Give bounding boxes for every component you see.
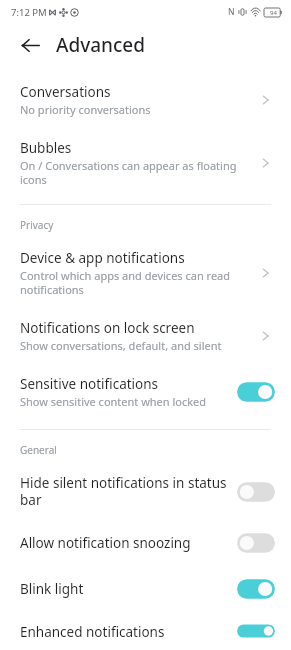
staticText: Show sensitive content when locked [20,394,207,409]
staticText: Hide silent notifications in status bar [20,474,227,509]
staticText: No priority conversations [20,102,151,117]
button[interactable]: Back [14,29,46,61]
button[interactable]: Toggle off [237,480,275,504]
staticText: Privacy [20,218,54,232]
button[interactable]: Sensitive notifications [0,364,291,420]
button[interactable]: Hide silent notifications in status bar [0,463,291,520]
staticText: On / Conversations can appear as floatin… [20,158,245,187]
staticText: Control which apps and devices can read … [20,268,245,297]
button[interactable]: Bubbles [0,128,291,198]
button[interactable]: Notifications on lock screen [0,308,291,364]
staticText: General [20,443,57,457]
staticText: Sensitive notifications [20,375,159,393]
staticText: N [228,6,235,18]
staticText: Blink light [20,580,84,598]
staticText: 94 [270,9,277,17]
staticText: Enhanced notifications [20,623,165,639]
staticText: Device & app notifications [20,249,185,267]
staticText: Conversations [20,83,111,101]
button[interactable]: Toggle on [237,380,275,404]
staticText: Show conversations, default, and silent [20,338,222,353]
button[interactable]: Conversations [0,72,291,128]
staticText: Bubbles [20,139,72,157]
staticText: Allow notification snoozing [20,534,191,552]
staticText: Notifications on lock screen [20,319,195,337]
button[interactable]: Toggle on [237,577,275,601]
button[interactable]: Device & app notifications [0,238,291,308]
button[interactable]: Toggle on [237,623,275,639]
staticText: 7:12 PM [11,6,47,19]
button[interactable]: Toggle off [237,531,275,555]
staticText: Advanced [56,32,146,58]
button[interactable]: Allow notification snoozing [0,520,291,566]
button[interactable]: Enhanced notifications [0,612,291,650]
button[interactable]: Blink light [0,566,291,612]
